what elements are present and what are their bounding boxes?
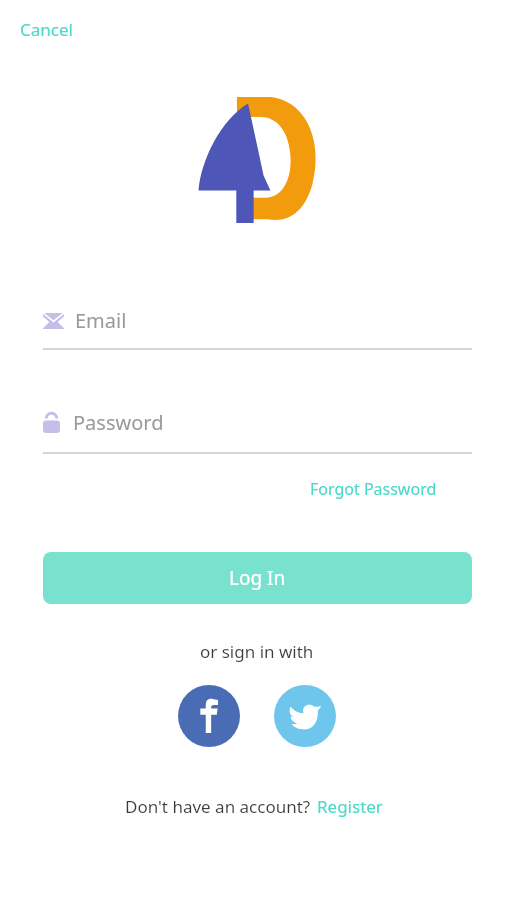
- staticText: Log In: [229, 565, 286, 591]
- button[interactable]: Sign in with Facebook: [178, 685, 240, 747]
- staticText: Register: [317, 795, 383, 818]
- staticText: Don't have an account?: [125, 795, 311, 818]
- staticText: Cancel: [20, 18, 73, 41]
- button[interactable]: Email: [43, 300, 472, 350]
- staticText: or sign in with: [200, 640, 314, 663]
- button[interactable]: Register: [311, 793, 389, 820]
- button[interactable]: Sign in with Twitter: [274, 685, 336, 747]
- staticText: Forgot Password: [310, 478, 437, 500]
- button[interactable]: Log In: [43, 552, 472, 604]
- button[interactable]: Forgot Password: [303, 474, 444, 504]
- staticText: Email: [75, 307, 127, 334]
- button[interactable]: Cancel: [12, 13, 81, 46]
- staticText: Password: [73, 409, 164, 436]
- button[interactable]: Password: [43, 404, 472, 454]
